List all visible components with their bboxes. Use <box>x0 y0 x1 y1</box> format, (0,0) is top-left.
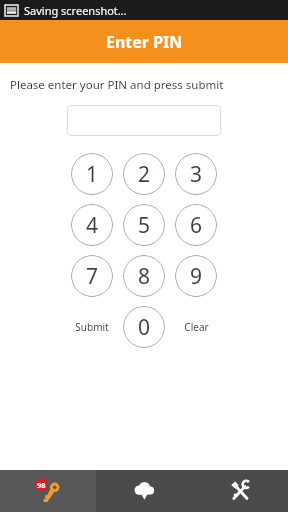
button[interactable] <box>67 105 221 136</box>
staticText: 8 <box>138 262 151 291</box>
button[interactable]: Downloads <box>96 470 192 512</box>
staticText: 0 <box>138 313 151 342</box>
button[interactable]: 5 <box>123 204 165 246</box>
staticText: 6 <box>190 211 203 240</box>
button[interactable]: Submit <box>71 306 113 348</box>
staticText: Submit <box>75 320 109 334</box>
staticText: Please enter your PIN and press submit <box>10 77 224 93</box>
button[interactable]: 3 <box>175 153 217 195</box>
staticText: 98 <box>37 480 46 490</box>
staticText: 9 <box>190 262 203 291</box>
staticText: 7 <box>86 262 99 291</box>
button[interactable]: Clear <box>175 306 217 348</box>
staticText: 3 <box>190 160 203 189</box>
button[interactable]: 9 <box>175 255 217 297</box>
staticText: Saving screenshot… <box>24 3 127 18</box>
staticText: Clear <box>184 320 209 334</box>
button[interactable]: 8 <box>123 255 165 297</box>
button[interactable]: 0 <box>123 306 165 348</box>
button[interactable]: 4 <box>71 204 113 246</box>
staticText: 4 <box>86 211 99 240</box>
staticText: 1 <box>86 160 99 189</box>
button[interactable]: 7 <box>71 255 113 297</box>
button[interactable]: Keys, 98 new <box>0 470 96 512</box>
button[interactable]: 1 <box>71 153 113 195</box>
staticText: 2 <box>138 160 151 189</box>
button[interactable]: 2 <box>123 153 165 195</box>
button[interactable]: Tools <box>192 470 288 512</box>
button[interactable]: 6 <box>175 204 217 246</box>
staticText: Enter PIN <box>106 31 183 53</box>
staticText: 5 <box>138 211 151 240</box>
